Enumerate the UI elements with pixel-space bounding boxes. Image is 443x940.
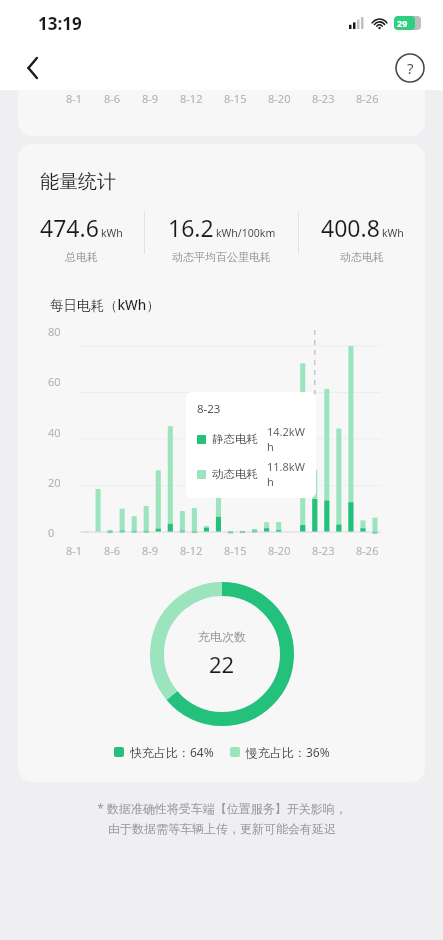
staticText: kWh/100km	[216, 226, 276, 240]
staticText: 8-23	[312, 91, 335, 106]
staticText: 每日电耗（kWh）	[50, 296, 160, 314]
staticText: 8-6	[104, 91, 121, 106]
staticText: 8-9	[142, 543, 159, 558]
staticText: 8-15	[224, 543, 247, 558]
staticText: 13:19	[38, 12, 82, 35]
staticText: 慢充占比：36%	[246, 744, 330, 760]
staticText: kWh	[382, 226, 404, 240]
staticText: 16.2	[168, 212, 214, 243]
staticText: 充电次数	[198, 629, 246, 644]
staticText: 静态电耗	[212, 432, 258, 446]
staticText: 8-1	[66, 543, 83, 558]
staticText: 8-20	[268, 91, 291, 106]
staticText: 由于数据需等车辆上传，更新可能会有延迟	[108, 821, 336, 836]
staticText: 总电耗	[65, 250, 98, 264]
staticText: 0	[48, 525, 55, 540]
staticText: 动态电耗	[212, 467, 258, 481]
staticText: 8-15	[224, 91, 247, 106]
button[interactable]: Help	[393, 51, 427, 85]
staticText: 20	[48, 475, 61, 490]
staticText: 40	[48, 425, 61, 440]
staticText: 快充占比：64%	[130, 744, 214, 760]
staticText: 80	[48, 324, 61, 339]
staticText: 29	[397, 17, 408, 29]
staticText: 8-23	[312, 543, 335, 558]
staticText: 8-1	[66, 91, 83, 106]
staticText: 22	[209, 649, 235, 679]
staticText: 60	[48, 374, 61, 389]
staticText: 400.8	[321, 212, 380, 243]
staticText: 能量统计	[40, 170, 116, 194]
staticText: 8-26	[356, 91, 379, 106]
staticText: 474.6	[40, 212, 99, 243]
staticText: kWh	[101, 226, 123, 240]
staticText: ?	[407, 58, 414, 78]
staticText: * 数据准确性将受车端【位置服务】开关影响，	[97, 800, 347, 816]
staticText: 8-26	[356, 543, 379, 558]
staticText: 8-12	[180, 543, 203, 558]
staticText: 8-9	[142, 91, 159, 106]
staticText: 动态电耗	[340, 250, 384, 264]
staticText: 8-6	[104, 543, 121, 558]
staticText: 14.2kWh	[267, 424, 305, 454]
staticText: 8-20	[268, 543, 291, 558]
staticText: 8-12	[180, 91, 203, 106]
staticText: 11.8kWh	[267, 459, 305, 489]
staticText: 动态平均百公里电耗	[172, 250, 271, 264]
button[interactable]: Back	[14, 49, 52, 87]
staticText: 8-23	[197, 401, 221, 417]
